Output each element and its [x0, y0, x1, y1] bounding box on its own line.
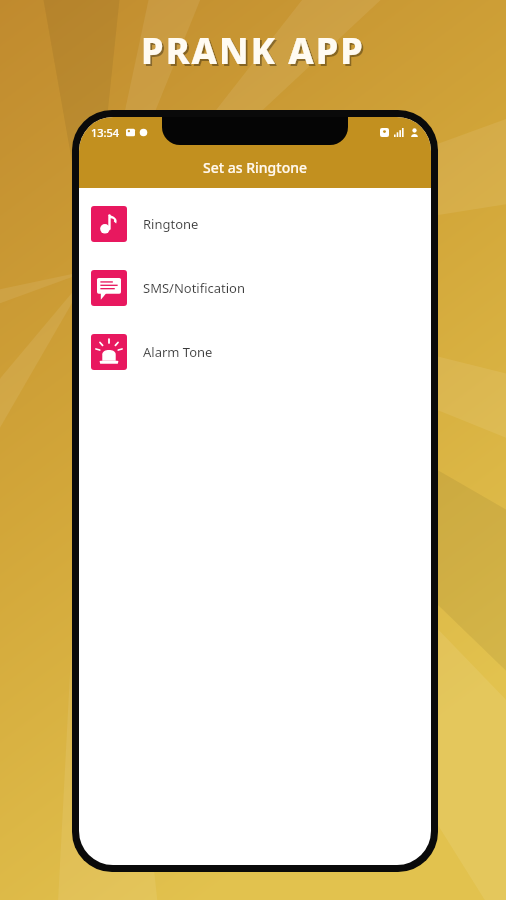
staticText: Ringtone — [143, 215, 199, 233]
staticText: PRANK APP — [143, 28, 367, 77]
staticText: SMS/Notification — [143, 279, 245, 297]
staticText: Alarm Tone — [143, 343, 213, 361]
button[interactable]: Ringtone — [79, 201, 431, 247]
staticText: 13:54 — [91, 125, 120, 140]
staticText: PRANK APP — [141, 26, 365, 75]
button[interactable]: SMS/Notification — [79, 265, 431, 311]
staticText: Set as Ringtone — [203, 158, 308, 177]
button[interactable]: Alarm Tone — [79, 329, 431, 375]
